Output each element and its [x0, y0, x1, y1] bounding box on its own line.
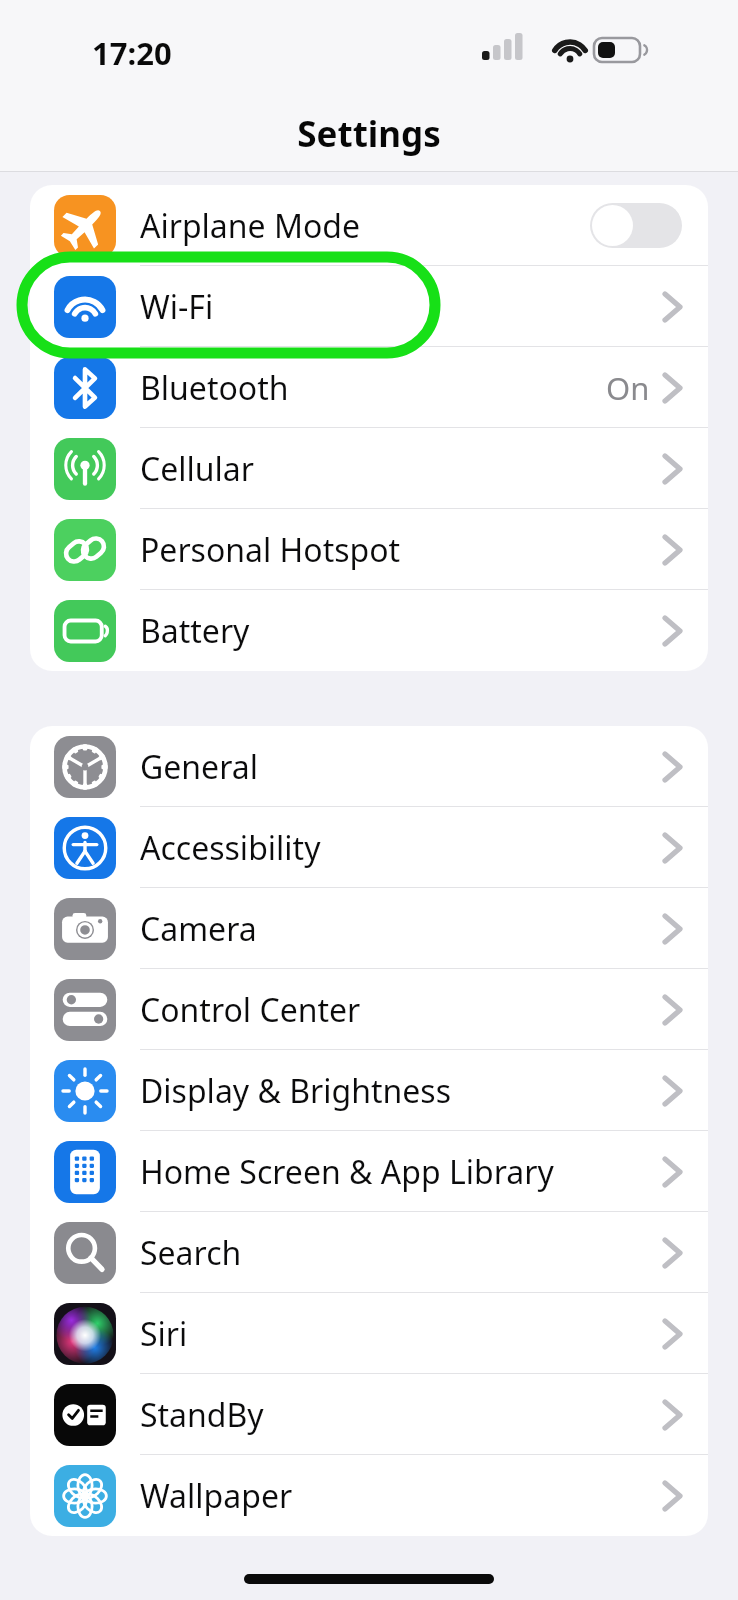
staticText: Wi-Fi — [140, 285, 214, 329]
button[interactable]: Airplane Mode — [30, 185, 708, 266]
staticText: Camera — [140, 907, 257, 951]
button[interactable]: Accessibility — [30, 807, 708, 888]
staticText: Settings — [0, 110, 738, 158]
staticText: Siri — [140, 1312, 188, 1356]
staticText: Cellular — [140, 447, 254, 491]
staticText: Home Screen & App Library — [140, 1150, 554, 1194]
button[interactable]: Battery — [30, 590, 708, 671]
button[interactable]: Camera — [30, 888, 708, 969]
staticText: Display & Brightness — [140, 1069, 451, 1113]
button[interactable]: StandBy — [30, 1374, 708, 1455]
staticText: Bluetooth — [140, 366, 289, 410]
button[interactable]: Wallpaper — [30, 1455, 708, 1536]
staticText: StandBy — [140, 1393, 264, 1437]
staticText: Wallpaper — [140, 1474, 293, 1518]
staticText: Search — [140, 1231, 242, 1275]
button[interactable]: Control Center — [30, 969, 708, 1050]
staticText: Control Center — [140, 988, 361, 1032]
staticText: General — [140, 745, 258, 789]
staticText: Accessibility — [140, 826, 321, 870]
button[interactable]: General — [30, 726, 708, 807]
button[interactable]: Search — [30, 1212, 708, 1293]
button[interactable]: Wi-Fi — [30, 266, 708, 347]
button[interactable]: Cellular — [30, 428, 708, 509]
staticText: On — [606, 367, 650, 409]
staticText: 17:20 — [92, 32, 172, 74]
button[interactable]: Siri — [30, 1293, 708, 1374]
staticText: Battery — [140, 609, 250, 653]
button[interactable]: Home Screen & App Library — [30, 1131, 708, 1212]
staticText: Airplane Mode — [140, 204, 361, 248]
button[interactable]: Personal Hotspot — [30, 509, 708, 590]
button[interactable]: Bluetooth — [30, 347, 708, 428]
button[interactable]: Display & Brightness — [30, 1050, 708, 1131]
staticText: Personal Hotspot — [140, 528, 401, 572]
